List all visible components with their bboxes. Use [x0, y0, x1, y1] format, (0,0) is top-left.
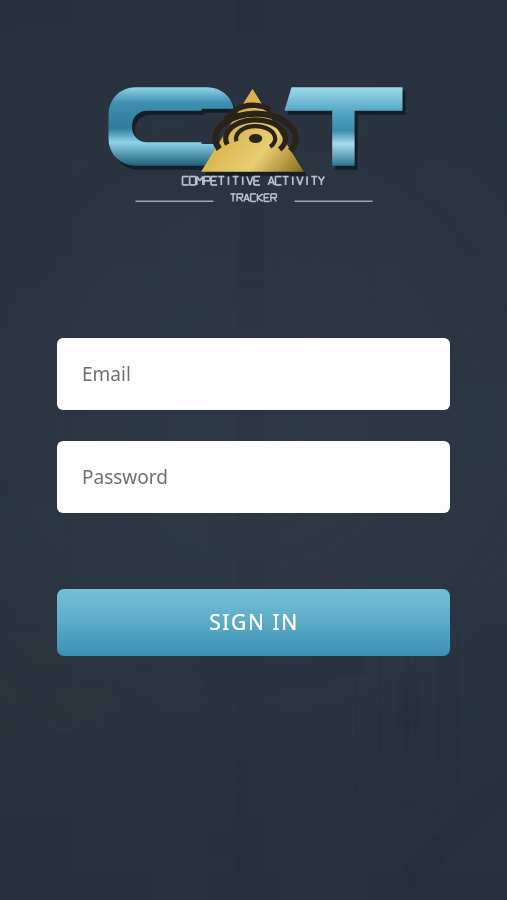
staticText: Password [82, 464, 168, 490]
button[interactable]: Password [57, 441, 450, 513]
staticText: Email [82, 361, 131, 387]
button[interactable]: SIGN IN [57, 589, 450, 656]
staticText: SIGN IN [209, 608, 299, 637]
button[interactable]: Email [57, 338, 450, 410]
